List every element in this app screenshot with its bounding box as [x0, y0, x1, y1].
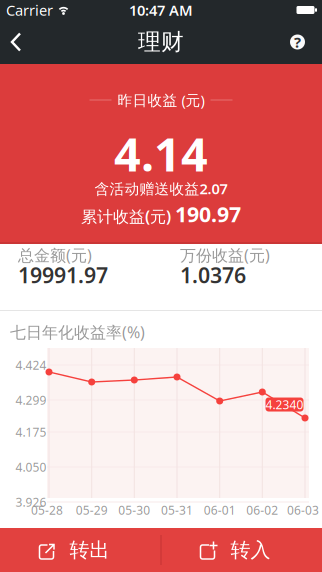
button[interactable]: [0, 20, 22, 64]
button[interactable]: 转出: [0, 528, 161, 572]
staticText: 05-29: [76, 502, 108, 518]
staticText: 3.926: [15, 494, 46, 510]
staticText: 4.424: [15, 357, 46, 373]
staticText: 06-03: [287, 502, 319, 518]
staticText: 190.97: [175, 200, 241, 228]
staticText: 10:47 AM: [129, 0, 193, 20]
staticText: 19991.97: [18, 261, 108, 289]
staticText: 转入: [230, 538, 270, 562]
staticText: 1.0376: [180, 261, 246, 289]
staticText: 总金额(元): [18, 244, 92, 266]
staticText: 4.050: [15, 459, 46, 475]
staticText: 06-01: [204, 502, 236, 518]
staticText: 05-28: [31, 502, 63, 518]
staticText: 转出: [69, 538, 109, 562]
staticText: 万份收益(元): [180, 244, 270, 266]
staticText: 昨日收益 (元): [117, 90, 204, 110]
staticText: 4.175: [15, 424, 46, 440]
staticText: 理财: [138, 28, 184, 56]
staticText: 4.299: [15, 392, 46, 408]
staticText: 4.2340: [265, 396, 303, 412]
staticText: Carrier: [6, 0, 53, 20]
staticText: 七日年化收益率(%): [10, 321, 145, 343]
staticText: 含活动赠送收益2.07: [94, 179, 227, 198]
staticText: 累计收益(元): [81, 206, 171, 227]
staticText: 05-31: [161, 502, 193, 518]
button[interactable]: 转入: [161, 528, 322, 572]
button[interactable]: ?: [290, 19, 322, 65]
staticText: ?: [294, 32, 301, 52]
staticText: 06-02: [246, 502, 278, 518]
staticText: 4.14: [114, 122, 208, 184]
staticText: 05-30: [118, 502, 150, 518]
